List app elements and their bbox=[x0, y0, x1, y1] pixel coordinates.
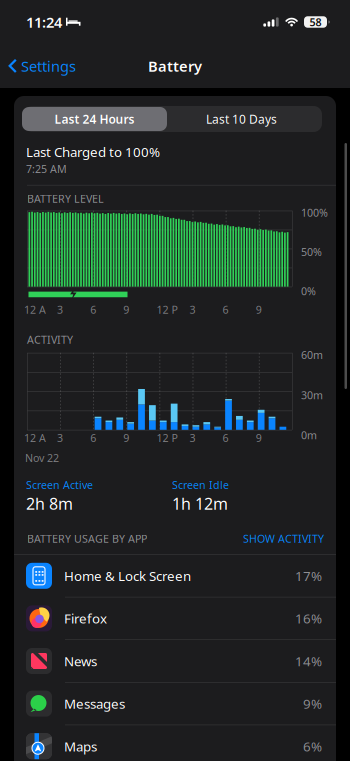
staticText: 9 bbox=[123, 303, 129, 317]
staticText: 16% bbox=[295, 610, 322, 627]
button[interactable]: Maps bbox=[14, 725, 336, 761]
staticText: Home & Lock Screen bbox=[64, 567, 191, 585]
staticText: 0% bbox=[301, 284, 316, 298]
staticText: BATTERY LEVEL bbox=[27, 191, 104, 206]
staticText: 17% bbox=[295, 567, 322, 585]
staticText: 58 bbox=[309, 15, 321, 29]
staticText: 3 bbox=[57, 303, 63, 317]
staticText: 3 bbox=[189, 431, 195, 445]
staticText: 3 bbox=[57, 431, 63, 445]
staticText: 60m bbox=[301, 348, 323, 362]
staticText: 6 bbox=[90, 431, 96, 445]
staticText: Nov 22 bbox=[25, 451, 59, 465]
staticText: 11:24 bbox=[26, 12, 62, 32]
staticText: 7:25 AM bbox=[26, 162, 67, 176]
staticText: 6 bbox=[223, 303, 229, 317]
staticText: Last 10 Days bbox=[206, 111, 277, 127]
staticText: 9 bbox=[123, 431, 129, 445]
staticText: 6 bbox=[223, 431, 229, 445]
staticText: Firefox bbox=[64, 610, 107, 627]
staticText: 2h 8m bbox=[26, 493, 73, 514]
staticText: ACTIVITY bbox=[27, 333, 73, 347]
staticText: BATTERY USAGE BY APP bbox=[27, 532, 147, 546]
staticText: Maps bbox=[64, 737, 97, 755]
staticText: Messages bbox=[64, 695, 125, 712]
button[interactable]: News bbox=[14, 640, 336, 682]
staticText: 9% bbox=[303, 695, 322, 712]
staticText: 12 P bbox=[156, 431, 177, 445]
staticText: 12 P bbox=[156, 303, 177, 317]
staticText: 1h 12m bbox=[172, 493, 228, 514]
button[interactable]: Home & Lock Screen bbox=[14, 555, 336, 597]
staticText: 30m bbox=[301, 388, 323, 402]
staticText: SHOW ACTIVITY bbox=[243, 532, 324, 546]
staticText: 100% bbox=[301, 206, 328, 220]
button[interactable]: Messages bbox=[14, 683, 336, 725]
staticText: Battery bbox=[148, 56, 202, 76]
staticText: Last Charged to 100% bbox=[26, 143, 160, 161]
staticText: 9 bbox=[256, 303, 262, 317]
staticText: Last 24 Hours bbox=[54, 111, 134, 127]
button[interactable]: Settings bbox=[0, 50, 82, 82]
staticText: 50% bbox=[301, 245, 322, 259]
staticText: 3 bbox=[189, 303, 195, 317]
staticText: 6 bbox=[90, 303, 96, 317]
staticText: 12 A bbox=[24, 303, 46, 317]
button[interactable]: Firefox bbox=[14, 597, 336, 639]
button[interactable]: SHOW ACTIVITY bbox=[243, 532, 324, 546]
staticText: 6% bbox=[303, 737, 322, 755]
staticText: 14% bbox=[295, 652, 322, 670]
staticText: 12 A bbox=[24, 431, 46, 445]
staticText: News bbox=[64, 652, 97, 670]
button[interactable]: Last 24 Hours bbox=[22, 107, 167, 131]
staticText: 0m bbox=[301, 428, 317, 442]
staticText: 9 bbox=[256, 431, 262, 445]
staticText: Settings bbox=[21, 56, 76, 76]
staticText: Screen Active bbox=[26, 478, 93, 492]
staticText: Screen Idle bbox=[172, 478, 229, 492]
button[interactable]: Last 10 Days bbox=[169, 107, 314, 131]
